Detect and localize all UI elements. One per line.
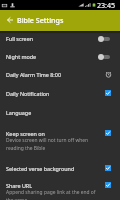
button[interactable]: Checkbox <box>104 89 112 97</box>
button[interactable]: Checkbox <box>104 129 112 137</box>
staticText: Daily Notification <box>6 90 50 97</box>
button[interactable]: Share URL <box>0 178 120 200</box>
button[interactable]: Language <box>0 105 120 126</box>
button[interactable]: Checkbox <box>104 181 112 189</box>
staticText: Share URL <box>6 182 32 189</box>
button[interactable]: Daily Alarm Time 8:00 <box>0 67 120 86</box>
button[interactable]: Full screen <box>0 31 120 49</box>
staticText: Keep screen on <box>6 130 45 137</box>
button[interactable]: Checkbox <box>104 164 112 172</box>
staticText: Daily Alarm Time 8:00 <box>6 71 61 78</box>
staticText: Bible Settings <box>17 15 64 25</box>
staticText: Night mode <box>6 53 37 60</box>
button[interactable]: Toggle <box>98 35 110 42</box>
button[interactable]: Alarm time <box>104 70 112 78</box>
button[interactable]: Selected verse background <box>0 161 120 178</box>
button[interactable]: Toggle <box>98 53 110 60</box>
staticText: Append sharing page link at the end of t… <box>6 189 96 200</box>
staticText: 23:45 <box>97 0 116 10</box>
staticText: Device screen will not turn off when rea… <box>6 137 96 151</box>
button[interactable]: Back <box>0 10 17 31</box>
staticText: Full screen <box>6 35 34 42</box>
button[interactable]: Night mode <box>0 49 120 67</box>
button[interactable]: Daily Notification <box>0 86 120 105</box>
staticText: Language <box>6 109 32 116</box>
staticText: Selected verse background <box>6 165 75 172</box>
button[interactable]: Keep screen on <box>0 126 120 161</box>
